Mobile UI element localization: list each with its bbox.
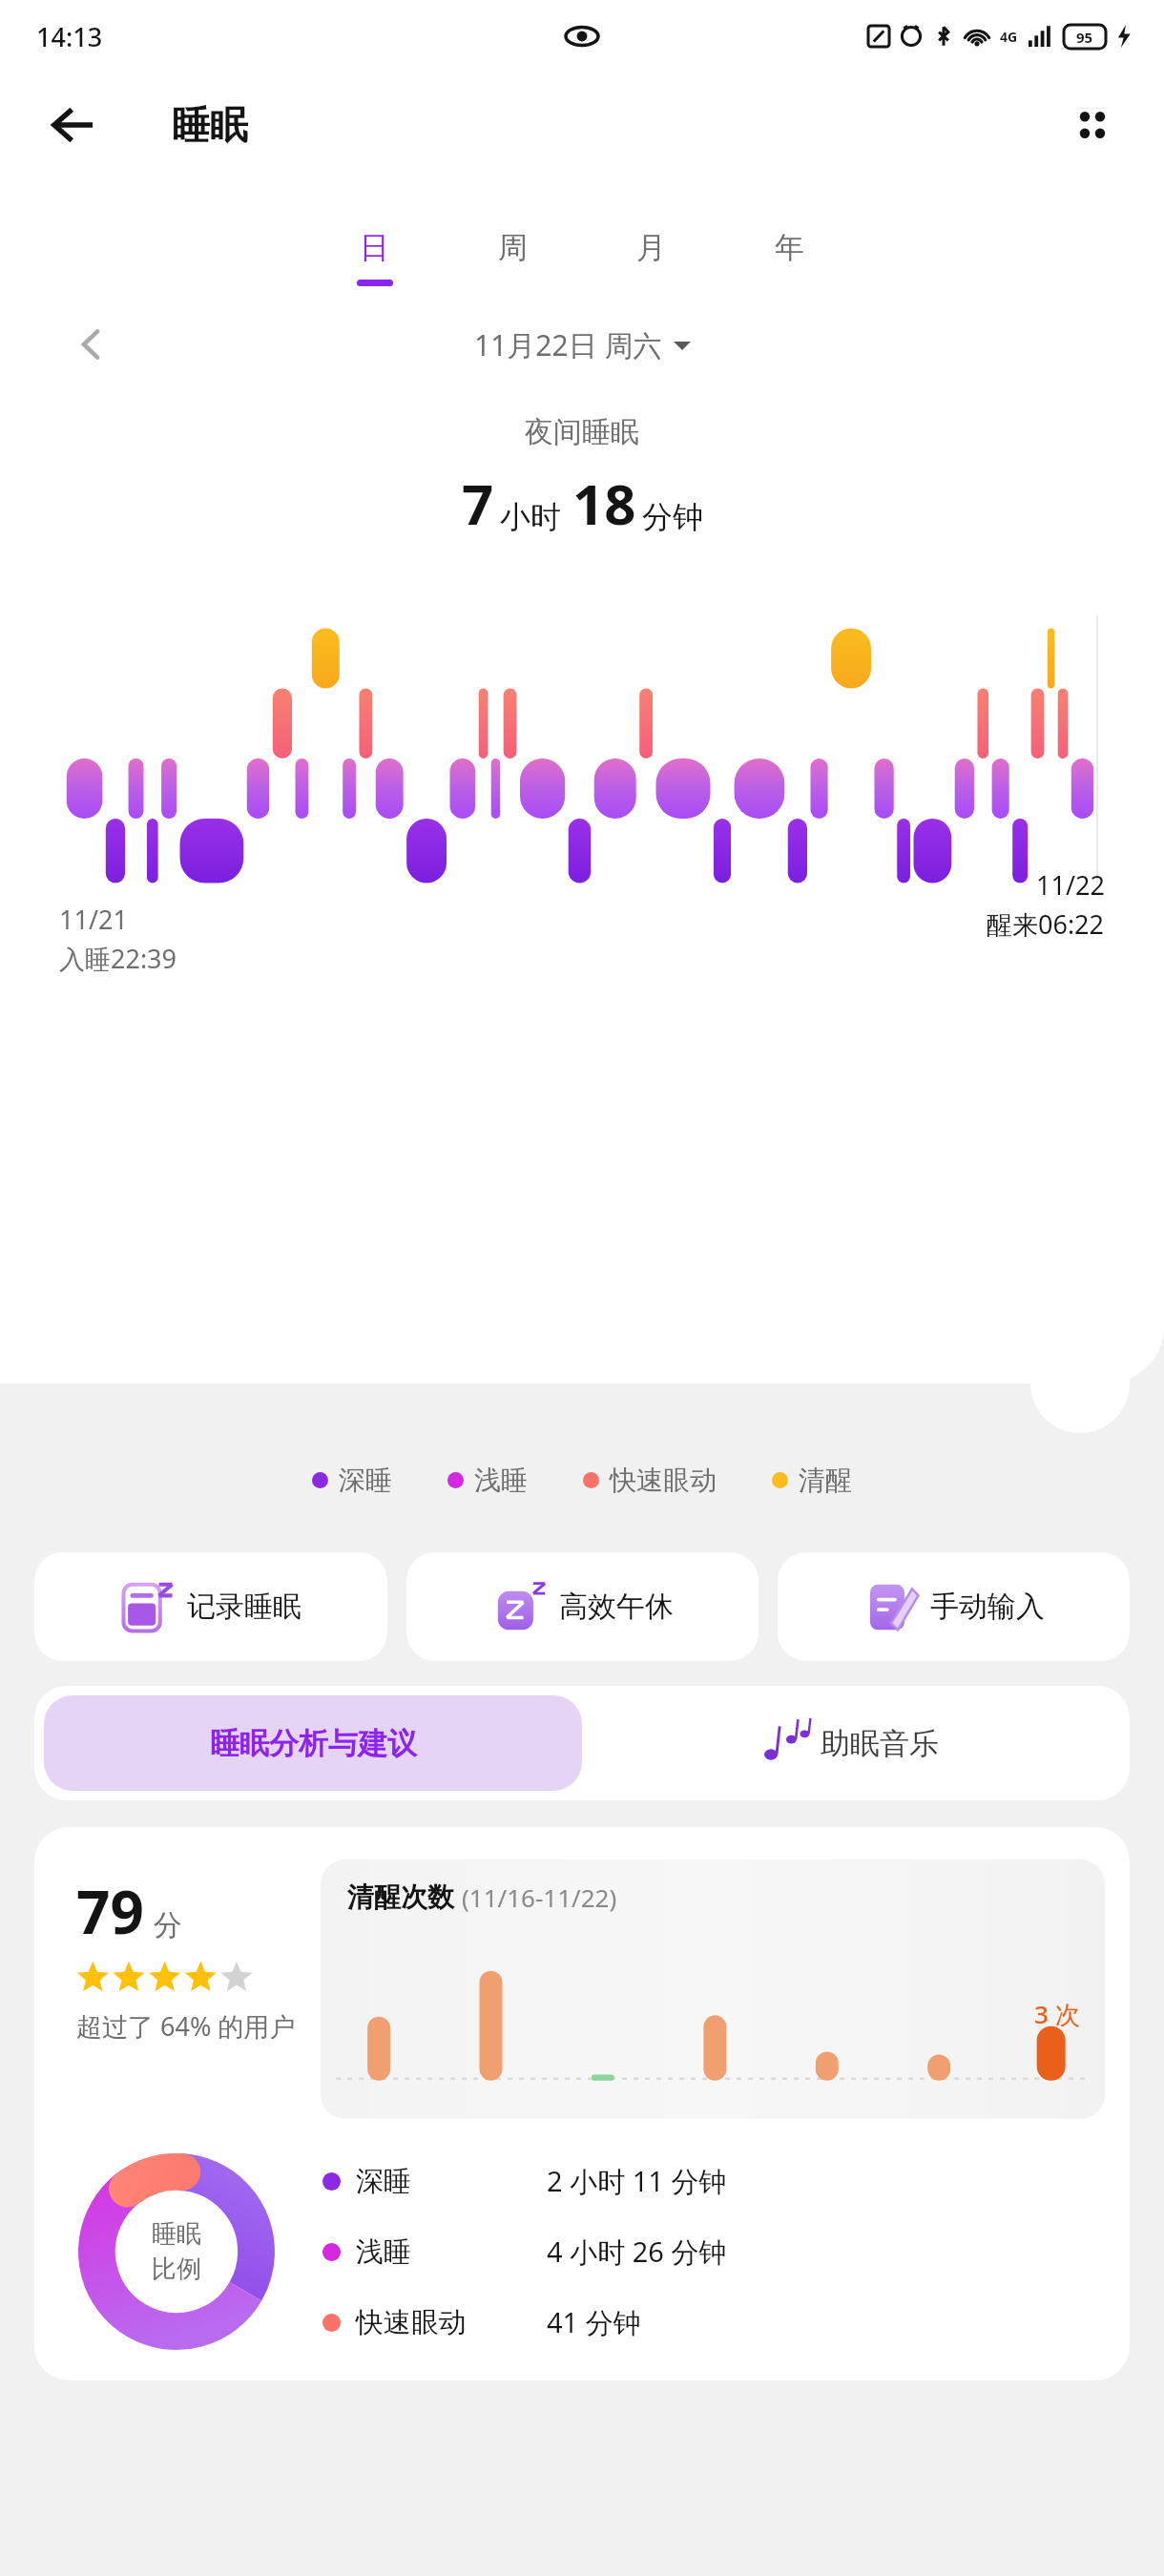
button[interactable]: 79: [34, 1827, 1130, 2380]
staticText: 助眠音乐: [821, 1725, 939, 1762]
staticText: 浅睡: [474, 1464, 528, 1497]
staticText: 4 小时 26 分钟: [547, 2233, 727, 2271]
staticText: 深睡: [356, 2164, 547, 2199]
staticText: 11月22日 周六: [474, 325, 662, 364]
staticText: 入睡22:39: [59, 941, 177, 976]
staticText: 快速眼动: [610, 1464, 717, 1497]
staticText: 清醒次数: [347, 1880, 454, 1914]
staticText: 快速眼动: [356, 2305, 547, 2340]
staticText: 3 次: [1034, 1997, 1080, 2031]
button[interactable]: 月: [582, 223, 720, 292]
staticText: 分钟: [642, 498, 703, 536]
button[interactable]: 11月22日 周六: [474, 325, 691, 364]
staticText: 睡眠: [172, 101, 248, 149]
button[interactable]: 助眠音乐: [582, 1695, 1120, 1791]
staticText: 浅睡: [356, 2234, 547, 2270]
staticText: 夜间睡眠: [0, 414, 1164, 450]
staticText: 年: [775, 229, 804, 266]
staticText: 11/22: [1036, 867, 1105, 903]
button[interactable]: More options: [1063, 95, 1122, 155]
button[interactable]: 年: [720, 223, 859, 292]
staticText: 周: [498, 229, 528, 266]
staticText: 月: [636, 229, 666, 266]
button[interactable]: Sleep details: [1030, 1334, 1130, 1433]
button[interactable]: 记录睡眠: [34, 1552, 387, 1661]
button[interactable]: Back: [44, 95, 103, 155]
button[interactable]: 周: [444, 223, 582, 292]
staticText: 超过了 64% 的用户: [76, 2008, 296, 2044]
staticText: 79: [76, 1871, 144, 1951]
staticText: 日: [360, 229, 389, 266]
staticText: 深睡: [339, 1464, 392, 1497]
button[interactable]: 手动输入: [778, 1552, 1130, 1661]
staticText: 18: [572, 466, 636, 541]
staticText: 睡眠: [152, 2218, 201, 2250]
staticText: 记录睡眠: [187, 1589, 301, 1625]
staticText: 7: [462, 466, 494, 541]
staticText: 2 小时 11 分钟: [547, 2162, 727, 2200]
staticText: 手动输入: [930, 1589, 1045, 1625]
staticText: 清醒: [799, 1464, 852, 1497]
button[interactable]: 高效午休: [406, 1552, 759, 1661]
button[interactable]: Previous day: [61, 314, 122, 375]
staticText: 高效午休: [559, 1589, 674, 1625]
staticText: 14:13: [36, 19, 103, 54]
staticText: 41 分钟: [547, 2303, 641, 2341]
staticText: 95: [1076, 28, 1093, 47]
staticText: 睡眠分析与建议: [210, 1725, 417, 1762]
button[interactable]: 日: [305, 223, 444, 292]
staticText: 11/21: [59, 902, 128, 937]
staticText: 醒来06:22: [987, 906, 1105, 942]
staticText: 比例: [152, 2254, 201, 2285]
staticText: 小时: [500, 498, 561, 536]
button[interactable]: 睡眠分析与建议: [44, 1695, 582, 1791]
staticText: 4G: [1000, 28, 1018, 46]
staticText: 分: [154, 1907, 182, 1943]
staticText: (11/16-11/22): [462, 1880, 617, 1914]
